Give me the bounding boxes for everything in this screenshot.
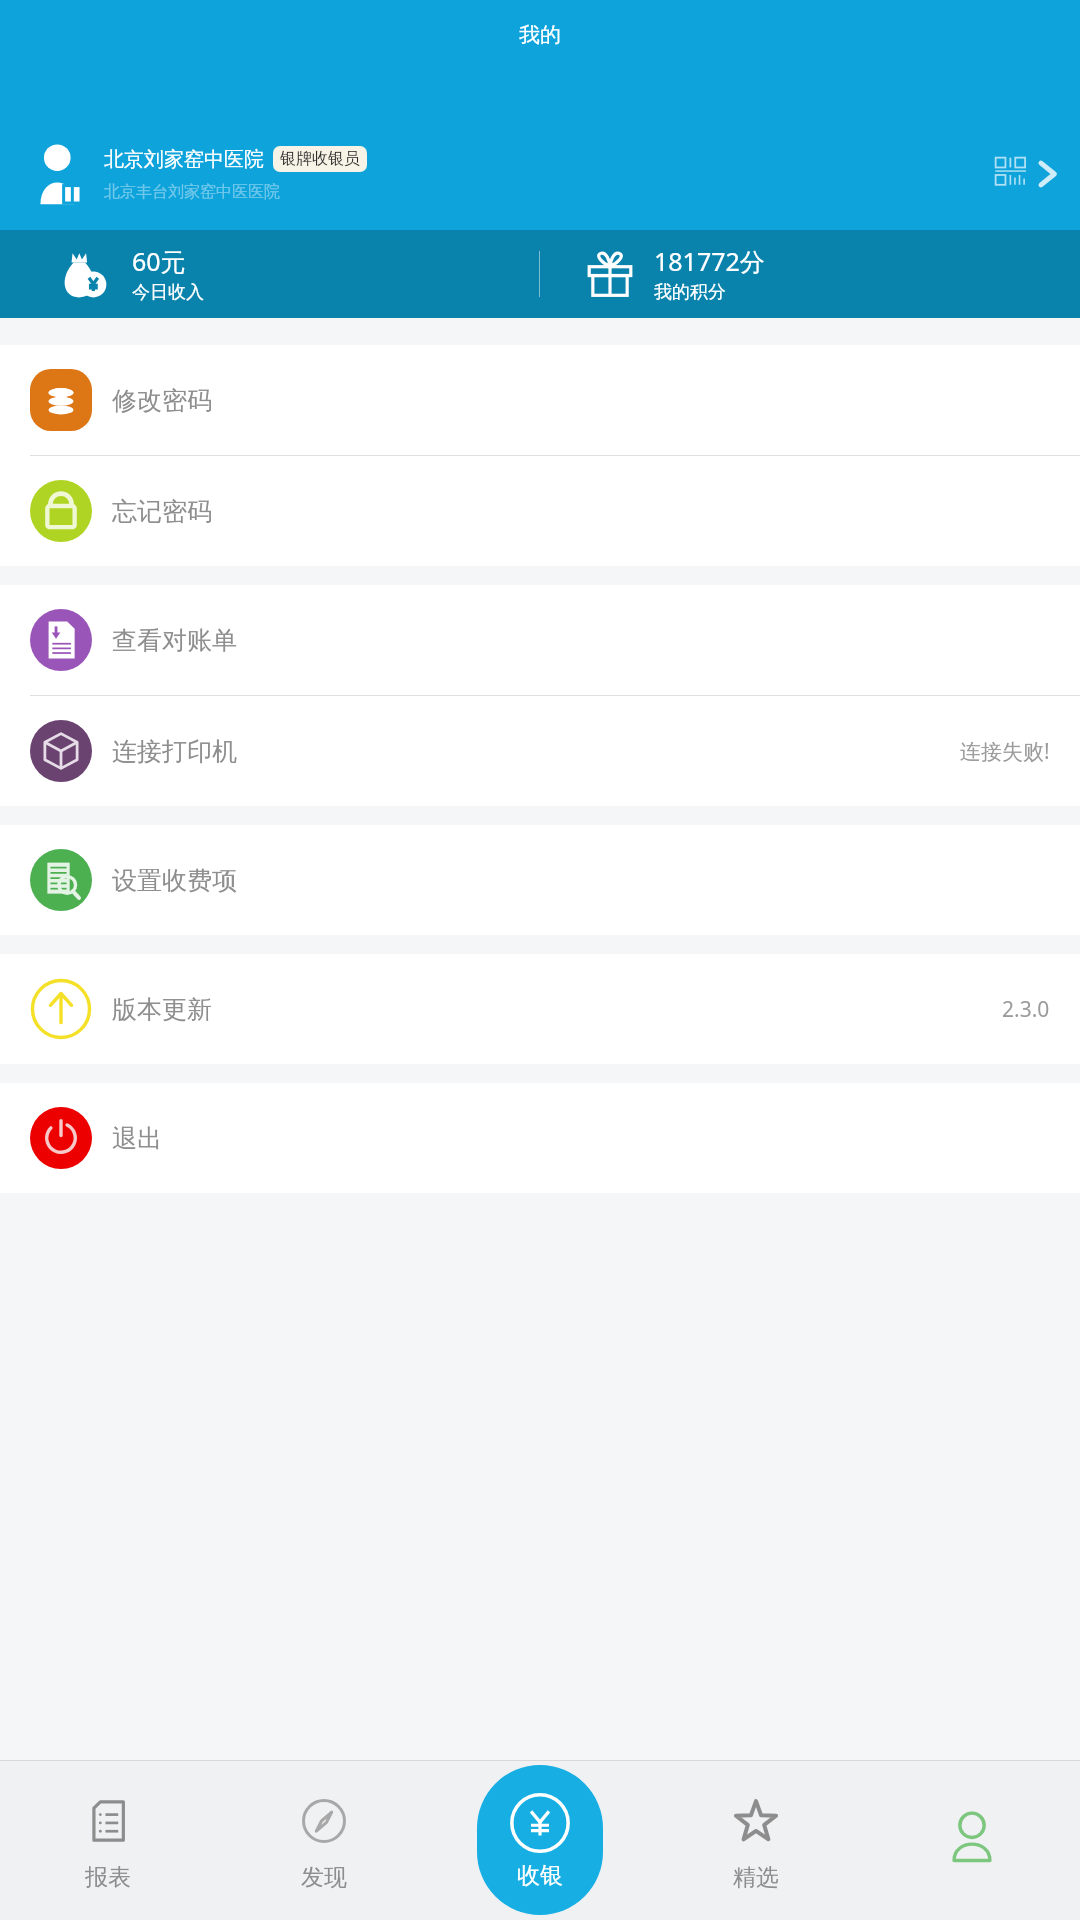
staticText: 银牌收银员 (280, 149, 360, 169)
other: QR code (994, 156, 1030, 192)
button[interactable]: 设置收费项 (0, 825, 1080, 935)
button[interactable]: 报表 (0, 1760, 216, 1920)
button[interactable]: 版本更新 (0, 954, 1080, 1064)
staticText: 忘记密码 (112, 496, 212, 527)
staticText: 收银 (517, 1861, 563, 1890)
staticText: 修改密码 (112, 385, 212, 416)
button[interactable]: 精选 (648, 1760, 864, 1920)
staticText: 连接失败! (960, 737, 1050, 766)
staticText: 北京丰台刘家窑中医医院 (104, 182, 280, 202)
staticText: 我的积分 (654, 281, 726, 304)
staticText: 发现 (301, 1863, 347, 1892)
button[interactable]: 查看对账单 (0, 585, 1080, 695)
button[interactable]: 收银 (432, 1760, 648, 1920)
staticText: 2.3.0 (1002, 995, 1050, 1024)
staticText: 查看对账单 (112, 625, 237, 656)
button[interactable]: 退出 (0, 1083, 1080, 1193)
button[interactable]: 181772分 (540, 230, 1080, 318)
staticText: 181772分 (654, 244, 765, 278)
staticText: 精选 (733, 1863, 779, 1892)
button[interactable]: 忘记密码 (0, 456, 1080, 566)
staticText: 60元 (132, 244, 186, 278)
staticText: 设置收费项 (112, 865, 237, 896)
staticText: 报表 (85, 1863, 131, 1892)
staticText: 北京刘家窑中医院 (104, 147, 264, 172)
button[interactable]: 北京刘家窑中医院 (0, 118, 1080, 230)
staticText: 退出 (112, 1123, 162, 1154)
staticText: 我的 (519, 22, 561, 48)
staticText: 连接打印机 (112, 736, 237, 767)
button[interactable]: Profile (864, 1760, 1080, 1920)
staticText: 版本更新 (112, 994, 212, 1025)
button[interactable]: 连接打印机 (0, 696, 1080, 806)
button[interactable]: 发现 (216, 1760, 432, 1920)
button[interactable]: 60元 (0, 230, 539, 318)
staticText: 今日收入 (132, 281, 204, 304)
button[interactable]: 修改密码 (0, 345, 1080, 455)
